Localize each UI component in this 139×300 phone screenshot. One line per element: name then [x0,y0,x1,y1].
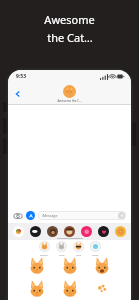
button[interactable]: Recent [39,241,50,256]
button[interactable]: Cat sticker 1 [60,257,80,277]
button[interactable]: App 3 [64,226,75,237]
button[interactable]: App Store [26,211,35,220]
button[interactable]: App 1 [30,226,41,237]
button[interactable]: App 2 [47,226,58,237]
staticText: iMessage [42,213,58,218]
button[interactable]: App 4 [81,226,92,237]
button[interactable]: Cat sticker 5 [92,280,112,300]
staticText: Sleep [92,253,99,256]
button[interactable]: Camera [13,211,23,221]
button[interactable]: Cute [56,241,67,256]
staticText: Cute [59,253,65,256]
button[interactable]: Send [118,212,125,219]
button[interactable]: Sleep [90,241,101,256]
button[interactable]: App 6 [115,226,126,237]
button[interactable]: Cat sticker 4 [60,280,80,300]
button[interactable]: Awesome the C… [57,85,82,103]
button[interactable]: App 0 [13,226,24,237]
button[interactable]: iMessage [38,211,126,220]
staticText: Cool [76,253,82,256]
staticText: Recent [40,253,49,256]
button[interactable]: Cat sticker 2 [92,257,112,277]
staticText: Awesome the C… [57,99,82,103]
button[interactable]: Cat sticker 0 [27,257,47,277]
button[interactable]: App 5 [98,226,109,237]
button[interactable]: Cat sticker 3 [27,280,47,300]
staticText: the Cat… [47,30,93,45]
staticText: Awesome [44,12,95,27]
button[interactable]: Cool [73,241,84,256]
staticText: 9:53 [16,73,26,80]
button[interactable]: Back [11,87,25,101]
